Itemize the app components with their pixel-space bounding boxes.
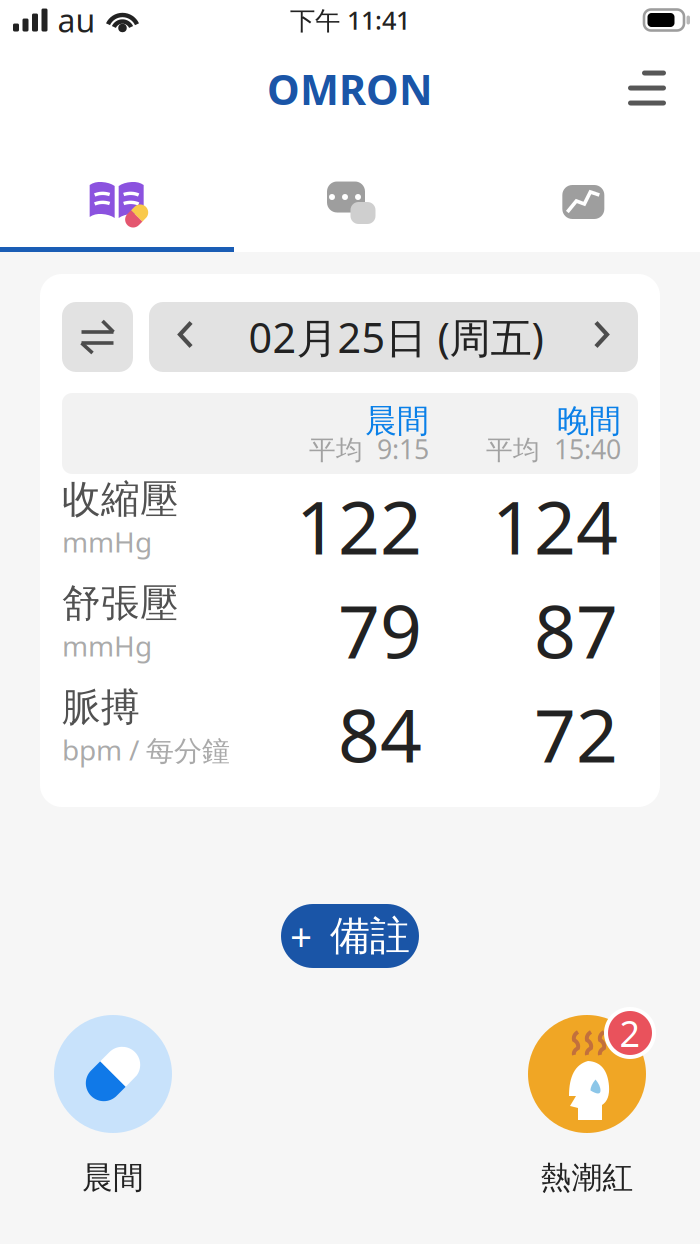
staticText: 平均 9:15 xyxy=(309,431,429,467)
staticText: au xyxy=(57,0,95,41)
staticText: 晨間 xyxy=(365,401,429,441)
staticText: 平均 15:40 xyxy=(486,431,621,467)
staticText: 收縮壓 xyxy=(62,475,179,523)
button[interactable]: Menu xyxy=(628,46,700,119)
staticText: 2 xyxy=(619,1009,640,1057)
staticText: 84 xyxy=(338,685,422,783)
staticText: 87 xyxy=(534,581,618,679)
button[interactable]: Diary xyxy=(0,126,233,252)
staticText: 舒張壓 xyxy=(62,579,179,627)
staticText: mmHg xyxy=(62,523,152,560)
button[interactable]: Swap columns xyxy=(62,302,133,372)
staticText: 晨間 xyxy=(82,1159,144,1197)
staticText: 02月25日 (周五) xyxy=(248,310,543,364)
staticText: 124 xyxy=(492,477,618,575)
staticText: 79 xyxy=(338,581,422,679)
staticText: 122 xyxy=(296,477,422,575)
button[interactable]: + xyxy=(281,904,419,968)
button[interactable]: 2 xyxy=(528,1015,646,1197)
button[interactable]: Next day xyxy=(590,302,638,372)
staticText: 脈搏 xyxy=(62,683,140,731)
staticText: 熱潮紅 xyxy=(540,1159,633,1197)
button[interactable]: Messages xyxy=(233,126,467,252)
staticText: mmHg xyxy=(62,627,152,664)
staticText: bpm / 每分鐘 xyxy=(62,731,230,768)
button[interactable]: 晨間 xyxy=(54,1015,172,1197)
staticText: 晚間 xyxy=(557,401,621,441)
staticText: + xyxy=(290,910,312,962)
staticText: 下午 11:41 xyxy=(290,3,410,37)
button[interactable]: Trends xyxy=(467,126,700,252)
staticText: 備註 xyxy=(330,911,410,960)
staticText: 72 xyxy=(534,685,618,783)
button[interactable]: Previous day xyxy=(149,302,202,372)
staticText: OMRON xyxy=(267,62,433,116)
